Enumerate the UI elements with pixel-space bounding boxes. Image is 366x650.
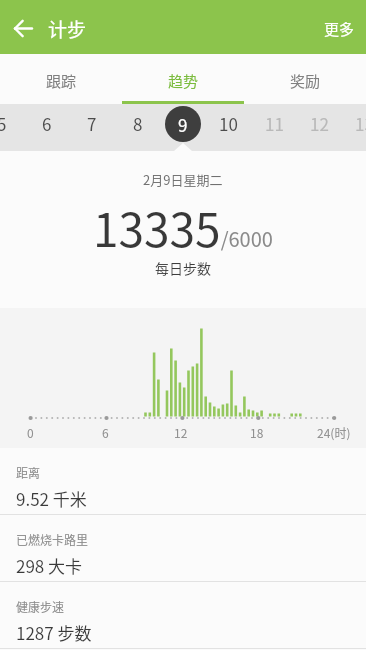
staticText: 12 bbox=[174, 424, 188, 441]
button[interactable] bbox=[0, 3, 46, 54]
staticText: 13335/6000 bbox=[93, 194, 273, 261]
button[interactable]: 趋势 bbox=[122, 54, 244, 104]
button[interactable]: 12 bbox=[297, 100, 341, 147]
button[interactable]: 7 bbox=[70, 100, 114, 147]
staticText: 2月9日星期二 bbox=[143, 170, 223, 189]
button[interactable]: 距离 bbox=[0, 448, 366, 515]
staticText: 距离 bbox=[16, 464, 41, 481]
button[interactable]: 13 bbox=[342, 100, 366, 147]
staticText: 跟踪 bbox=[46, 70, 77, 92]
button[interactable]: 8 bbox=[116, 100, 160, 147]
button[interactable]: 健康步速 bbox=[0, 582, 366, 649]
staticText: 9.52 千米 bbox=[16, 486, 87, 511]
staticText: 11 bbox=[265, 111, 284, 136]
staticText: 健康步速 bbox=[16, 598, 65, 615]
staticText: 已燃烧卡路里 bbox=[16, 531, 89, 548]
button[interactable]: 奖励 bbox=[244, 54, 366, 104]
staticText: 更多 bbox=[324, 18, 355, 40]
button[interactable]: 9 bbox=[165, 106, 201, 142]
staticText: 计步 bbox=[48, 15, 87, 43]
button[interactable]: 更多 bbox=[313, 10, 366, 48]
button[interactable]: 11 bbox=[252, 100, 296, 147]
staticText: 1287 步数 bbox=[16, 620, 92, 645]
staticText: 每日步数 bbox=[155, 258, 211, 278]
button[interactable]: 5 bbox=[0, 100, 24, 147]
staticText: 奖励 bbox=[290, 70, 321, 92]
staticText: 298 大卡 bbox=[16, 553, 83, 578]
staticText: 6 bbox=[42, 111, 52, 136]
staticText: 6 bbox=[102, 424, 109, 441]
staticText: 8 bbox=[133, 111, 143, 136]
staticText: 24(时) bbox=[317, 424, 351, 441]
button[interactable]: 6 bbox=[25, 100, 69, 147]
staticText: 18 bbox=[250, 424, 264, 441]
staticText: 9 bbox=[178, 112, 188, 137]
staticText: 0 bbox=[27, 424, 34, 441]
button[interactable]: 跟踪 bbox=[0, 54, 122, 104]
button[interactable]: 10 bbox=[206, 100, 250, 147]
button[interactable]: 已燃烧卡路里 bbox=[0, 515, 366, 582]
staticText: 10 bbox=[219, 111, 238, 136]
staticText: 5 bbox=[0, 111, 7, 136]
staticText: 7 bbox=[87, 111, 97, 136]
staticText: 13 bbox=[355, 111, 366, 136]
staticText: 12 bbox=[310, 111, 329, 136]
staticText: 趋势 bbox=[168, 70, 199, 92]
